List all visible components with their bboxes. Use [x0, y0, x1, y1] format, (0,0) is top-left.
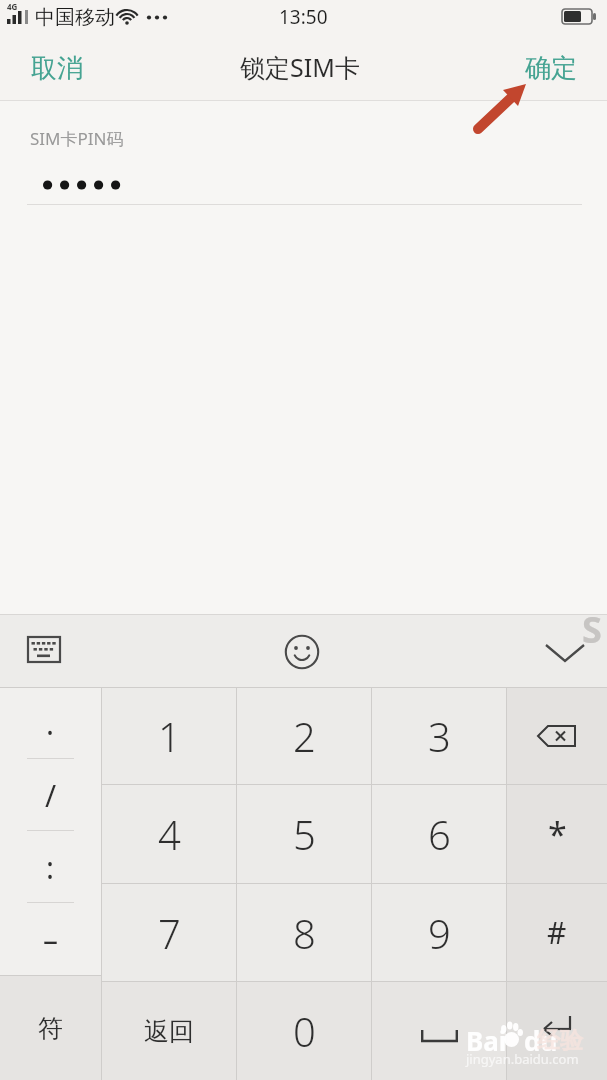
button[interactable]: 0	[237, 982, 371, 1080]
button[interactable]	[16, 625, 72, 675]
button[interactable]: 确定	[508, 47, 594, 89]
button[interactable]: 符	[0, 976, 101, 1080]
button[interactable]: 8	[237, 884, 371, 981]
button[interactable]: 3	[372, 688, 506, 784]
staticText: 1	[158, 709, 181, 763]
staticText: 确定	[525, 52, 577, 85]
button[interactable]: 返回	[102, 982, 236, 1080]
staticText: 取消	[31, 52, 83, 85]
button[interactable]: –	[0, 903, 101, 975]
button[interactable]	[507, 688, 607, 784]
staticText: #	[547, 912, 567, 953]
button[interactable]	[372, 982, 506, 1080]
staticText: /	[45, 775, 57, 816]
button[interactable]: 2	[237, 688, 371, 784]
button[interactable]: 7	[102, 884, 236, 981]
button[interactable]: :	[0, 831, 101, 903]
staticText: Bai	[466, 1023, 507, 1058]
button[interactable]	[532, 627, 596, 677]
staticText: 锁定SIM卡	[240, 50, 360, 84]
staticText: S	[582, 605, 602, 654]
staticText: :	[46, 847, 55, 888]
staticText: 中国移动	[35, 5, 115, 30]
staticText: –	[43, 919, 58, 960]
staticText: du	[524, 1023, 558, 1058]
button[interactable]	[274, 624, 330, 680]
staticText: .	[46, 703, 55, 744]
button[interactable]: #	[507, 884, 607, 981]
button[interactable]: 9	[372, 884, 506, 981]
staticText: 3	[428, 709, 451, 763]
staticText: 5	[293, 807, 316, 861]
button[interactable]: 6	[372, 785, 506, 883]
staticText: 2	[293, 709, 316, 763]
staticText: 9	[428, 906, 451, 960]
button[interactable]: 4	[102, 785, 236, 883]
staticText: 4G	[7, 1, 18, 12]
staticText: *	[548, 811, 567, 857]
button[interactable]: 取消	[14, 47, 100, 89]
staticText: 符	[38, 1013, 63, 1044]
staticText: 8	[293, 906, 316, 960]
staticText: 7	[158, 906, 181, 960]
button[interactable]: 5	[237, 785, 371, 883]
staticText: 6	[428, 807, 451, 861]
button[interactable]	[507, 982, 607, 1080]
button[interactable]: *	[507, 785, 607, 883]
staticText: SIM卡PIN码	[30, 127, 124, 150]
staticText: 返回	[144, 1016, 194, 1047]
staticText: 4	[158, 807, 181, 861]
staticText: 0	[293, 1004, 316, 1058]
button[interactable]: 1	[102, 688, 236, 784]
staticText: jingyan.baidu.com	[466, 1050, 579, 1068]
button[interactable]: .	[0, 688, 101, 759]
button[interactable]: /	[0, 759, 101, 831]
staticText: 经验	[537, 1026, 583, 1055]
staticText: 13:50	[279, 4, 328, 30]
